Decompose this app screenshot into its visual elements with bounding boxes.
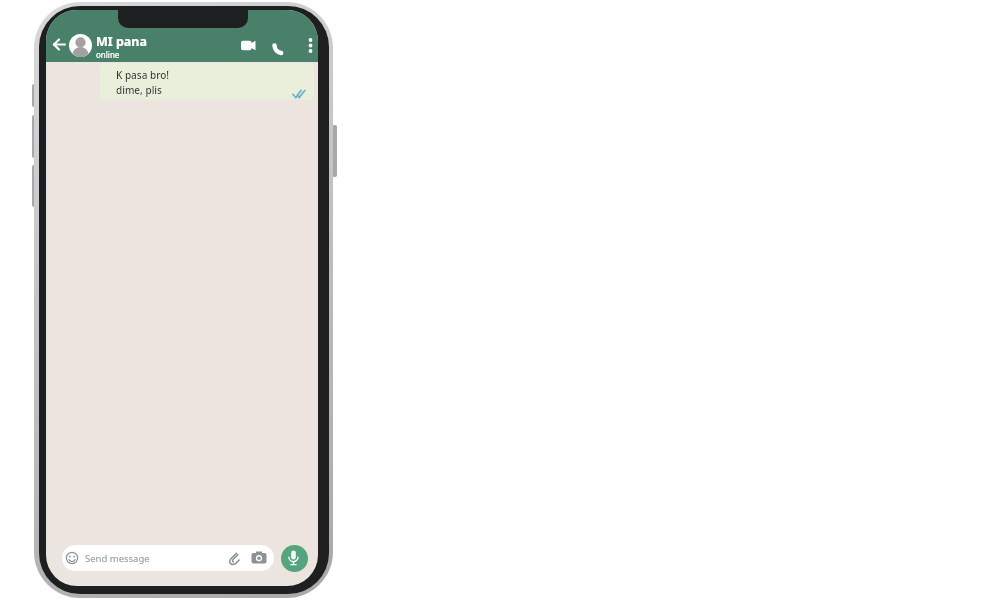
button[interactable] [281, 545, 308, 572]
button[interactable] [62, 545, 274, 571]
button[interactable] [51, 36, 68, 53]
button[interactable] [46, 10, 318, 62]
button[interactable] [239, 37, 258, 54]
staticText: MI pana [96, 33, 147, 50]
button[interactable] [226, 550, 241, 566]
button[interactable] [251, 551, 267, 564]
staticText: K pasa bro! [116, 68, 170, 82]
staticText: online [96, 49, 120, 60]
staticText: Send message [85, 552, 150, 565]
button[interactable] [305, 36, 316, 55]
button[interactable] [100, 63, 314, 100]
staticText: dime, plis [116, 83, 162, 97]
button[interactable] [273, 37, 290, 54]
